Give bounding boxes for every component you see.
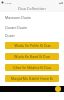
staticText: ▲ ▮ [59,1,63,4]
staticText: 10:45 [5,1,12,4]
staticText: Wudu Se Pehle Ki Dua [14,43,51,48]
staticText: Ghar Se Nikalne Ki Dua [13,65,51,70]
staticText: Qurani Duain [5,25,27,30]
button[interactable]: Ghar Se Nikalne Ki Dua [5,64,59,71]
staticText: Wudu Ke Baad Ki Dua [14,54,50,59]
button[interactable]: Wudu Ke Baad Ki Dua [5,53,59,60]
button[interactable]: Masjid Me Dakhil Hone Ki [5,75,59,82]
button[interactable]: Wudu Se Pehle Ki Dua [5,42,59,49]
staticText: Dua Collection [18,6,46,11]
staticText: Masjid Me Dakhil Hone Ki [11,76,53,81]
staticText: Duain [5,33,15,38]
staticText: Masnoon Duain [5,15,32,20]
